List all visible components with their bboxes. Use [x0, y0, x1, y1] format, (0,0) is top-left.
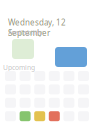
staticText: Availability: [8, 28, 42, 37]
staticText: Wednesday, 12 September: [8, 17, 66, 38]
staticText: Upcoming: [3, 63, 35, 72]
